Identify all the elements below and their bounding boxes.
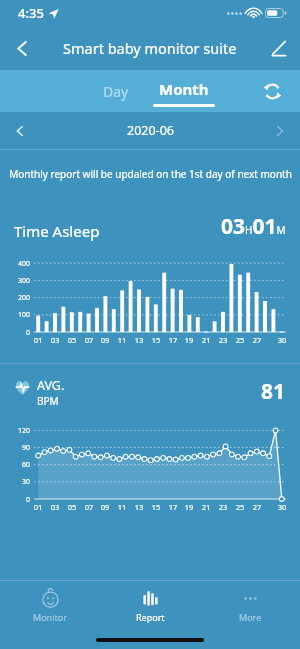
staticText: 23 (216, 502, 230, 512)
button[interactable]: Month (150, 70, 218, 112)
staticText: 90 (8, 443, 30, 453)
staticText: 30 (275, 335, 289, 345)
staticText: 30 (8, 477, 30, 487)
staticText: 27 (250, 335, 264, 345)
staticText: 2020-06 (127, 122, 174, 139)
staticText: 13 (132, 502, 146, 512)
staticText: 13 (132, 335, 146, 345)
staticText: Smart baby monitor suite (63, 38, 237, 58)
staticText: 15 (149, 502, 163, 512)
staticText: 27 (250, 502, 264, 512)
staticText: BPM (37, 394, 59, 408)
staticText: 05 (65, 335, 79, 345)
staticText: 21 (199, 335, 213, 345)
button[interactable]: Edit (256, 26, 300, 70)
staticText: 11 (115, 335, 129, 345)
staticText: Report (136, 611, 165, 623)
staticText: 07 (82, 502, 96, 512)
staticText: More (239, 611, 262, 623)
staticText: 19 (182, 335, 196, 345)
button[interactable]: Next month (260, 112, 300, 149)
staticText: 25 (233, 502, 247, 512)
staticText: 17 (166, 335, 180, 345)
staticText: 120 (8, 426, 30, 436)
staticText: 09 (98, 335, 112, 345)
staticText: 300 (8, 276, 30, 286)
staticText: 0 (8, 328, 30, 338)
button[interactable]: Report (100, 581, 200, 631)
staticText: 30 (275, 502, 289, 512)
staticText: 03 (48, 335, 62, 345)
staticText: 400 (8, 259, 30, 269)
button[interactable]: Back (0, 26, 44, 70)
staticText: 19 (182, 502, 196, 512)
staticText: 25 (233, 335, 247, 345)
staticText: 03 (48, 502, 62, 512)
staticText: 01 (31, 502, 45, 512)
staticText: 03H01M (221, 212, 286, 241)
staticText: 4:35 (18, 4, 44, 22)
staticText: 01 (31, 335, 45, 345)
staticText: Time Asleep (14, 221, 100, 241)
staticText: 0 (8, 495, 30, 505)
button[interactable]: More (200, 581, 300, 631)
button[interactable]: Refresh (254, 73, 290, 109)
staticText: 200 (8, 293, 30, 303)
staticText: 07 (82, 335, 96, 345)
staticText: AVG. (37, 377, 65, 394)
staticText: 81 (261, 377, 286, 406)
staticText: 100 (8, 310, 30, 320)
staticText: Monitor (33, 611, 67, 623)
staticText: 09 (98, 502, 112, 512)
staticText: 17 (166, 502, 180, 512)
staticText: 21 (199, 502, 213, 512)
staticText: 11 (115, 502, 129, 512)
button[interactable]: Day (82, 70, 150, 112)
button[interactable]: Monitor (0, 581, 100, 631)
staticText: 23 (216, 335, 230, 345)
button[interactable]: Previous month (0, 112, 40, 149)
staticText: Day (103, 82, 129, 101)
staticText: Monthly report will be updaled on the 1s… (9, 167, 292, 181)
staticText: Month (159, 79, 209, 99)
staticText: 15 (149, 335, 163, 345)
staticText: 60 (8, 460, 30, 470)
staticText: 05 (65, 502, 79, 512)
